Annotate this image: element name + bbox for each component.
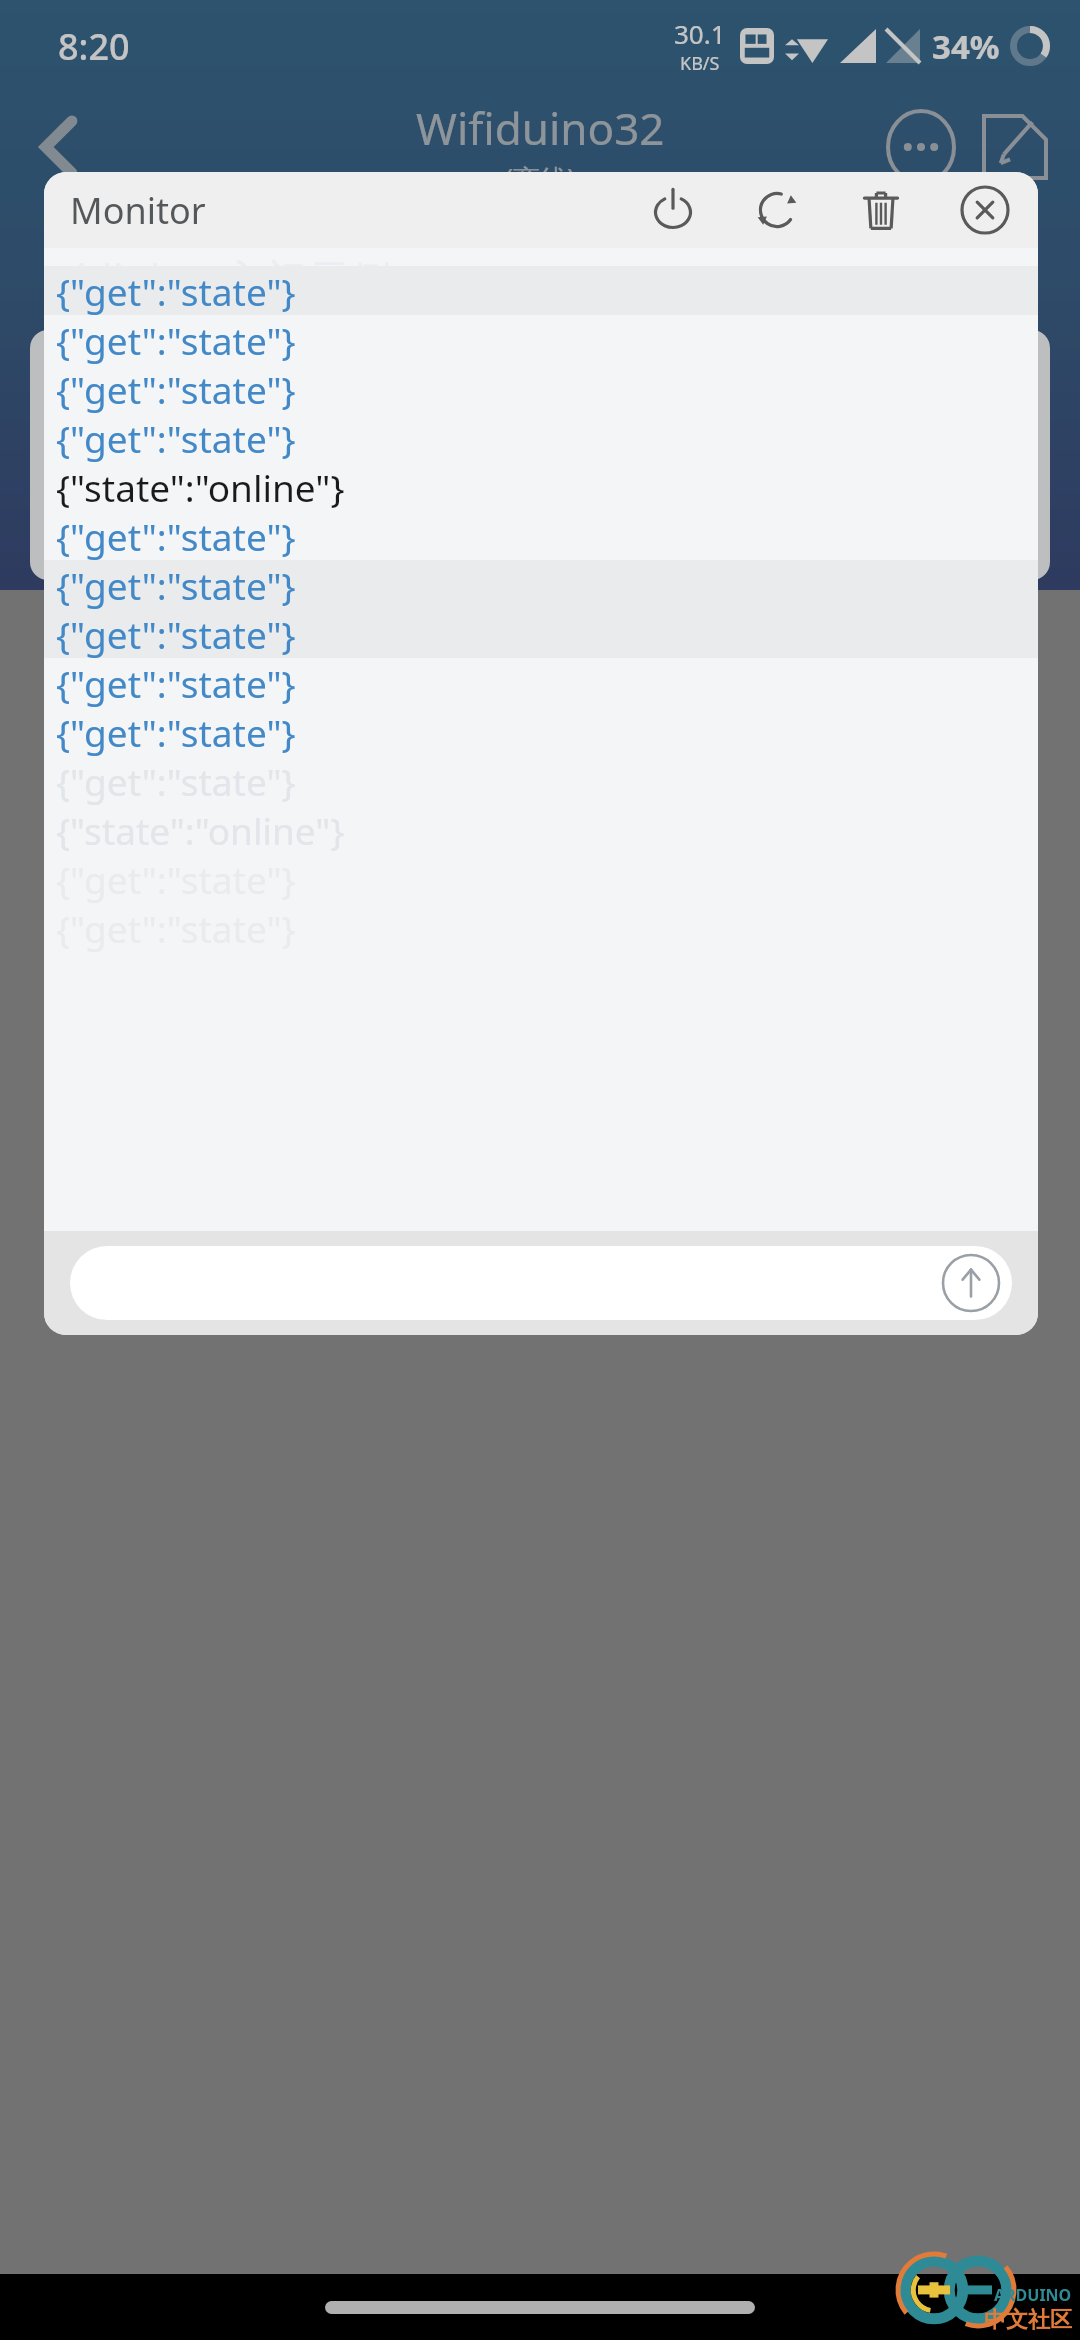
button[interactable]: Power xyxy=(642,179,704,241)
staticText: {"get":"state"} xyxy=(56,413,296,462)
button[interactable]: Close xyxy=(954,179,1016,241)
staticText: {"state":"online"} xyxy=(56,462,345,511)
staticText: {"get":"state"} xyxy=(56,658,296,707)
staticText: 34% xyxy=(932,24,1000,69)
staticText: {"get":"state"} xyxy=(56,511,296,560)
staticText: {"get":"state"} xyxy=(56,903,296,952)
staticText: {"get":"state"} xyxy=(56,364,296,413)
button[interactable]: Send xyxy=(940,1252,1002,1314)
staticText: {"get":"state"} xyxy=(56,266,296,315)
staticText: 30.1 xyxy=(674,16,726,51)
staticText: ARDUINO xyxy=(994,2284,1072,2306)
button[interactable]: Back xyxy=(20,107,100,187)
staticText: KB/S xyxy=(680,51,720,76)
staticText: {"get":"state"} xyxy=(56,609,296,658)
button[interactable]: 点我开关灯 xyxy=(726,330,1050,580)
staticText: (离线) xyxy=(505,160,576,197)
button[interactable]: Refresh xyxy=(746,179,808,241)
staticText: blinker 入门示例 xyxy=(76,250,392,307)
staticText: {"get":"state"} xyxy=(56,854,296,903)
staticText: Wifiduino32 xyxy=(416,98,665,158)
button[interactable]: Home xyxy=(325,2301,755,2314)
staticText: {"state":"online"} xyxy=(56,805,345,854)
button[interactable]: 点我计数 xyxy=(30,330,354,580)
button[interactable]: Edit xyxy=(972,104,1058,190)
staticText: {"get":"state"} xyxy=(56,707,296,756)
staticText: {"get":"state"} xyxy=(56,756,296,805)
staticText: {"get":"state"} xyxy=(56,315,296,364)
staticText: 8:20 xyxy=(58,22,130,71)
staticText: {"get":"state"} xyxy=(56,560,296,609)
staticText: 中文社区 xyxy=(984,2306,1072,2334)
staticText: 点我计数 xyxy=(132,502,252,540)
button[interactable]: More options xyxy=(878,104,964,190)
staticText: Monitor xyxy=(70,186,206,235)
button[interactable]: Send xyxy=(70,1246,1012,1320)
button[interactable]: Clear xyxy=(850,179,912,241)
